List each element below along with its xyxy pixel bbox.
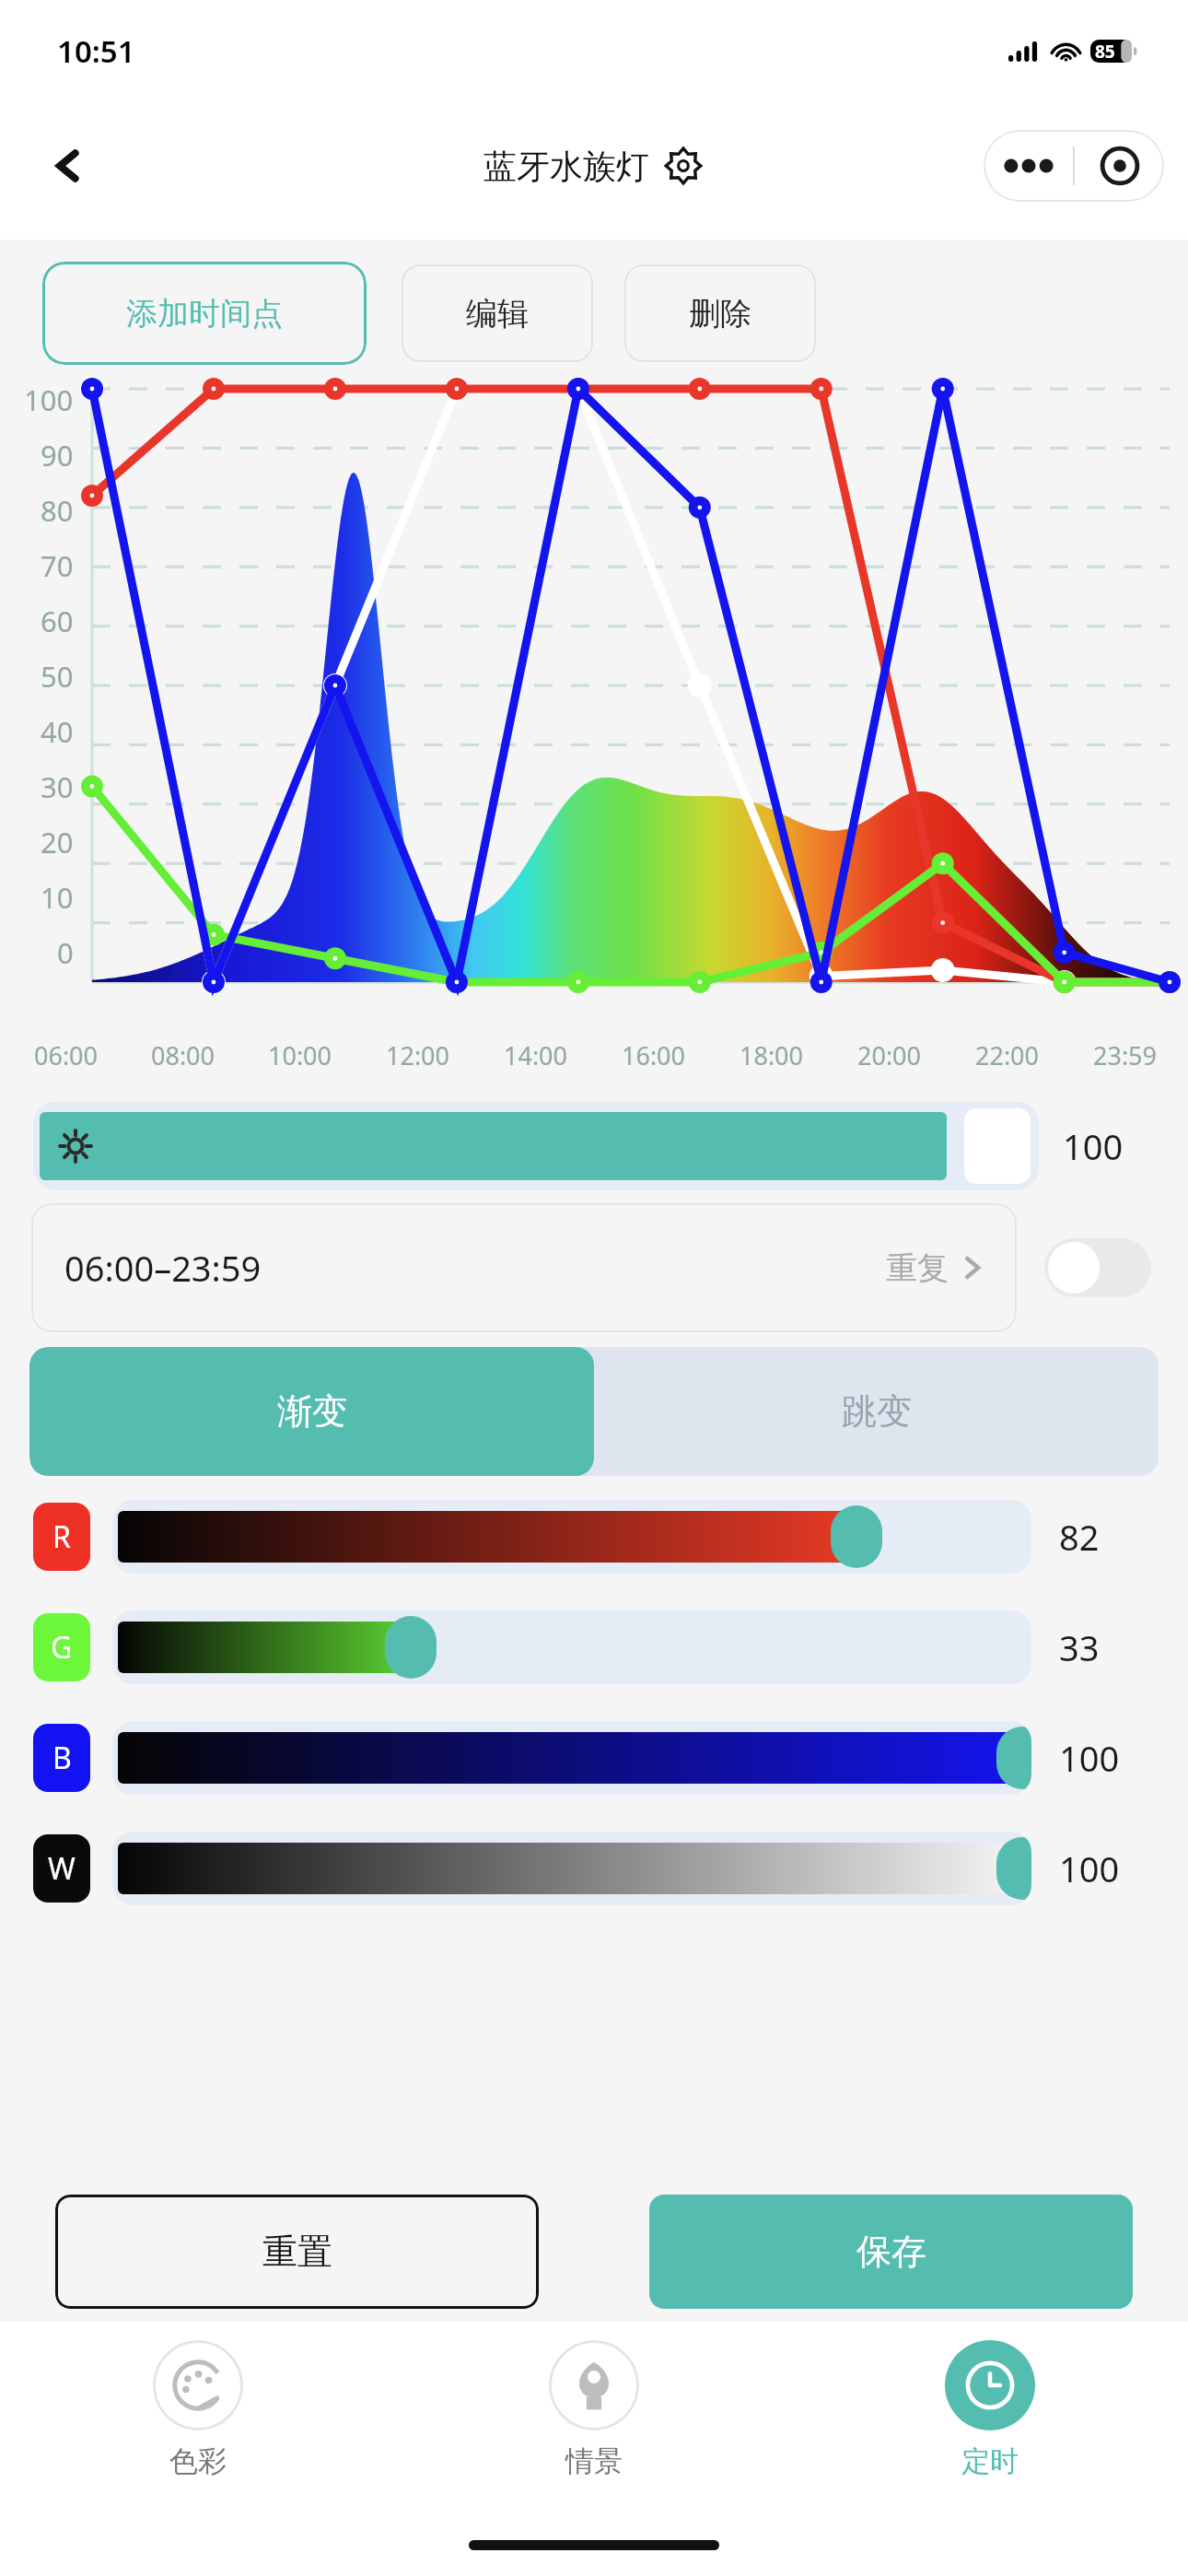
staticText: 100 xyxy=(1059,1734,1155,1782)
staticText: 18:00 xyxy=(740,1038,804,1072)
staticText: 70 xyxy=(41,546,74,585)
staticText: 08:00 xyxy=(151,1038,215,1072)
button[interactable]: Enable schedule xyxy=(1044,1238,1151,1297)
staticText: 删除 xyxy=(689,294,751,334)
staticText: 85 xyxy=(1095,40,1115,62)
staticText: 10:51 xyxy=(57,30,135,72)
staticText: 定时 xyxy=(961,2443,1019,2479)
staticText: 渐变 xyxy=(277,1389,347,1434)
button[interactable]: 情景 xyxy=(396,2322,792,2513)
staticText: 30 xyxy=(41,767,74,806)
staticText: 14:00 xyxy=(504,1038,568,1072)
staticText: W xyxy=(48,1848,76,1889)
staticText: 20:00 xyxy=(857,1038,922,1072)
button[interactable]: G value 33 xyxy=(112,1610,1031,1684)
staticText: 60 xyxy=(41,602,74,640)
button[interactable]: 06:00–23:59 xyxy=(31,1203,1017,1332)
button[interactable]: 色彩 xyxy=(0,2322,396,2513)
button[interactable]: 删除 xyxy=(624,264,816,362)
button[interactable]: 跳变 xyxy=(594,1347,1159,1476)
button[interactable]: 编辑 xyxy=(402,264,593,362)
staticText: 重复 xyxy=(886,1248,949,1288)
button[interactable]: B value 100 xyxy=(112,1721,1031,1795)
staticText: 20 xyxy=(41,823,74,861)
button[interactable]: W value 100 xyxy=(112,1832,1031,1905)
staticText: 重置 xyxy=(262,2230,332,2274)
button[interactable]: 定时 xyxy=(792,2322,1188,2513)
button[interactable]: R value 82 xyxy=(112,1500,1031,1574)
staticText: 40 xyxy=(41,712,74,751)
staticText: 100 xyxy=(24,381,74,419)
staticText: 色彩 xyxy=(169,2443,227,2479)
staticText: 33 xyxy=(1059,1623,1155,1671)
staticText: 10 xyxy=(41,878,74,917)
staticText: 跳变 xyxy=(842,1389,912,1434)
staticText: 情景 xyxy=(565,2443,623,2479)
button[interactable]: Back xyxy=(37,135,99,197)
staticText: 16:00 xyxy=(622,1038,686,1072)
staticText: 22:00 xyxy=(975,1038,1040,1072)
staticText: 添加时间点 xyxy=(126,294,283,334)
staticText: 保存 xyxy=(856,2230,926,2274)
staticText: 23:59 xyxy=(1093,1038,1158,1072)
staticText: 编辑 xyxy=(466,294,529,334)
staticText: 80 xyxy=(41,491,74,530)
button[interactable]: 保存 xyxy=(649,2195,1133,2309)
staticText: 82 xyxy=(1059,1513,1155,1561)
staticText: 90 xyxy=(41,436,74,474)
staticText: G xyxy=(51,1627,73,1668)
button[interactable]: 渐变 xyxy=(29,1347,594,1476)
button[interactable]: Brightness xyxy=(33,1102,1039,1190)
button[interactable]: More options xyxy=(984,130,1073,202)
staticText: 12:00 xyxy=(386,1038,450,1072)
staticText: 100 xyxy=(1063,1122,1155,1170)
staticText: 50 xyxy=(41,657,74,696)
button[interactable]: Settings xyxy=(662,145,705,187)
staticText: 10:00 xyxy=(268,1038,332,1072)
staticText: R xyxy=(52,1516,71,1557)
button[interactable]: 重置 xyxy=(55,2195,539,2309)
staticText: 100 xyxy=(1059,1844,1155,1892)
staticText: 0 xyxy=(57,933,74,972)
button[interactable]: Close xyxy=(1075,130,1164,202)
staticText: 蓝牙水族灯 xyxy=(483,146,649,187)
staticText: 06:00 xyxy=(34,1038,99,1072)
staticText: 06:00–23:59 xyxy=(64,1244,262,1292)
button[interactable]: 添加时间点 xyxy=(42,262,367,365)
staticText: B xyxy=(52,1738,72,1778)
